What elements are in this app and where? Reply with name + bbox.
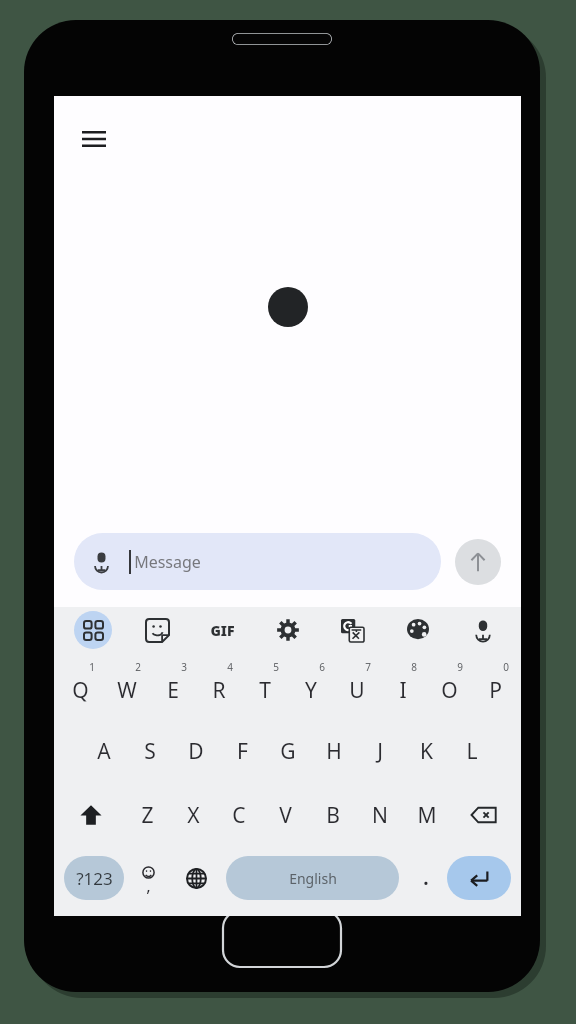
button[interactable]: Apps: [60, 607, 125, 653]
button[interactable]: Translate: [320, 607, 385, 653]
button[interactable]: 0: [472, 655, 518, 719]
button[interactable]: 7: [334, 655, 380, 719]
staticText: R: [212, 676, 226, 705]
button[interactable]: Menu: [72, 118, 116, 162]
button[interactable]: 5: [242, 655, 288, 719]
staticText: S: [144, 737, 156, 766]
staticText: English: [289, 869, 337, 888]
staticText: G: [280, 737, 296, 766]
button[interactable]: V: [262, 783, 309, 847]
staticText: Z: [141, 801, 154, 830]
button[interactable]: N: [356, 783, 403, 847]
button[interactable]: 1: [57, 655, 104, 719]
button[interactable]: 9: [426, 655, 472, 719]
staticText: H: [326, 737, 342, 766]
button[interactable]: English: [226, 856, 399, 900]
staticText: U: [349, 676, 365, 705]
staticText: J: [377, 737, 383, 766]
button[interactable]: Backspace: [450, 783, 518, 847]
staticText: 0: [503, 660, 509, 674]
staticText: C: [232, 801, 246, 830]
staticText: GIF: [210, 621, 235, 640]
staticText: E: [167, 676, 179, 705]
staticText: 4: [227, 660, 233, 674]
staticText: X: [187, 801, 200, 830]
button[interactable]: B: [309, 783, 356, 847]
staticText: I: [399, 676, 407, 705]
button[interactable]: Message: [74, 533, 441, 590]
button[interactable]: F: [219, 719, 265, 783]
button[interactable]: 3: [150, 655, 196, 719]
button[interactable]: J: [357, 719, 403, 783]
staticText: V: [279, 801, 292, 830]
button[interactable]: GIF: [190, 607, 255, 653]
staticText: W: [117, 676, 137, 705]
button[interactable]: Stickers: [125, 607, 190, 653]
staticText: B: [326, 801, 340, 830]
button[interactable]: Z: [124, 783, 170, 847]
staticText: Y: [305, 676, 317, 705]
button[interactable]: 2: [104, 655, 150, 719]
staticText: 6: [319, 660, 325, 674]
button[interactable]: L: [449, 719, 495, 783]
button[interactable]: 6: [288, 655, 334, 719]
button[interactable]: H: [311, 719, 357, 783]
staticText: 5: [273, 660, 279, 674]
button[interactable]: D: [173, 719, 219, 783]
button[interactable]: ?123: [64, 856, 124, 900]
button[interactable]: .: [405, 854, 447, 902]
button[interactable]: Send: [455, 539, 501, 585]
button[interactable]: Themes: [385, 607, 450, 653]
staticText: O: [441, 676, 458, 705]
button[interactable]: S: [127, 719, 173, 783]
button[interactable]: G: [265, 719, 311, 783]
staticText: Q: [72, 676, 89, 705]
staticText: ?123: [76, 867, 113, 890]
staticText: 8: [411, 660, 417, 674]
staticText: P: [489, 676, 502, 705]
staticText: N: [372, 801, 388, 830]
staticText: 3: [181, 660, 187, 674]
button[interactable]: M: [403, 783, 450, 847]
button[interactable]: Shift: [57, 783, 124, 847]
button[interactable]: 4: [196, 655, 242, 719]
staticText: 9: [457, 660, 463, 674]
staticText: 1: [89, 660, 95, 674]
staticText: A: [97, 737, 111, 766]
staticText: K: [420, 737, 433, 766]
button[interactable]: Settings: [255, 607, 320, 653]
staticText: ,: [146, 874, 151, 897]
staticText: Message: [134, 551, 201, 573]
button[interactable]: X: [170, 783, 216, 847]
button[interactable]: Voice input: [450, 607, 515, 653]
button[interactable]: K: [403, 719, 449, 783]
staticText: D: [188, 737, 204, 766]
staticText: L: [466, 737, 478, 766]
button[interactable]: Change language: [172, 854, 220, 902]
staticText: 2: [135, 660, 141, 674]
button[interactable]: A: [80, 719, 127, 783]
staticText: M: [417, 801, 437, 830]
button[interactable]: Emoji and comma: [124, 854, 172, 902]
staticText: T: [259, 676, 271, 705]
button[interactable]: 8: [380, 655, 426, 719]
button[interactable]: Enter: [447, 856, 511, 900]
staticText: .: [423, 865, 429, 891]
button[interactable]: C: [216, 783, 262, 847]
staticText: F: [237, 737, 248, 766]
staticText: 7: [365, 660, 371, 674]
